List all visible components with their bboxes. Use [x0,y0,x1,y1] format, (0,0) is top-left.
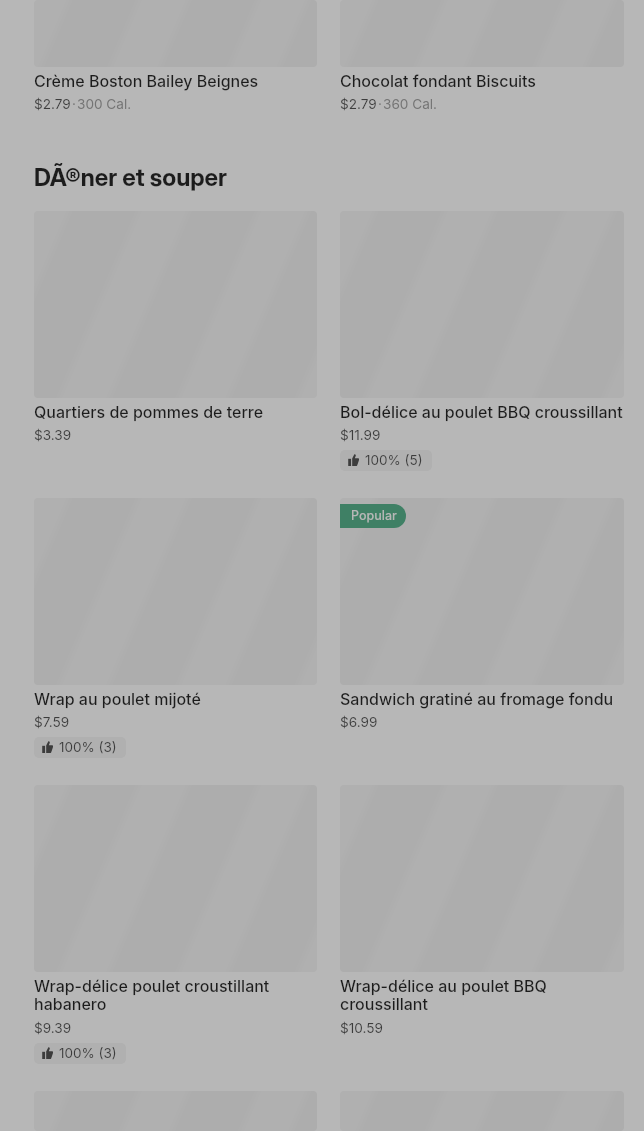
staticText: Popular [351,508,397,523]
button[interactable]: Popular [340,498,624,730]
staticText: · [72,96,76,112]
staticText: Wrap au poulet mijoté [34,689,201,708]
staticText: $3.39 [34,427,72,443]
staticText: · [378,96,382,112]
staticText: Wrap-délice poulet croustillant habanero [34,976,317,1014]
staticText: $11.99 [340,427,381,443]
staticText: Wrap-délice au poulet BBQ croussillant [340,976,624,1014]
staticText: 100% (5) [365,452,423,468]
staticText: $2.79 [340,96,377,112]
button[interactable]: Bol-délice au poulet BBQ croussillant [340,211,624,471]
staticText: DÃ®ner et souper [34,163,228,192]
staticText: $2.79 [34,96,71,112]
staticText: 360 Cal. [383,96,437,112]
button[interactable]: Chocolat fondant Biscuits [340,0,624,112]
staticText: Crème Boston Bailey Beignes [34,71,259,90]
staticText: $9.39 [34,1020,72,1036]
staticText: Bol-délice au poulet BBQ croussillant [340,402,623,421]
staticText: Chocolat fondant Biscuits [340,71,536,90]
staticText: 100% (3) [59,1045,117,1061]
staticText: Sandwich gratiné au fromage fondu [340,689,614,708]
staticText: Quartiers de pommes de terre [34,402,264,421]
button[interactable]: Crème Boston Bailey Beignes [34,0,317,112]
staticText: $7.59 [34,714,70,730]
button[interactable]: Wrap-délice poulet croustillant habanero [34,785,317,1064]
staticText: $10.59 [340,1020,383,1036]
staticText: $6.99 [340,714,378,730]
button[interactable]: Wrap au poulet mijoté [34,498,317,758]
button[interactable]: Wrap-délice au poulet BBQ croussillant [340,785,624,1036]
staticText: 300 Cal. [77,96,132,112]
staticText: 100% (3) [59,739,117,755]
button[interactable]: Quartiers de pommes de terre [34,211,317,443]
